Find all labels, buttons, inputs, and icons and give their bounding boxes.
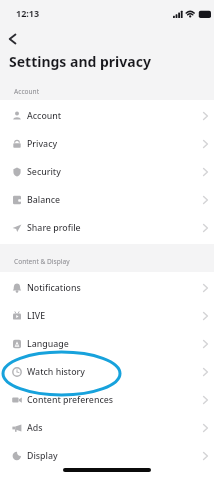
staticText: Account: [14, 87, 40, 96]
button[interactable]: Watch history: [0, 358, 214, 386]
staticText: Privacy: [27, 138, 58, 150]
staticText: Account: [27, 110, 62, 122]
button[interactable]: Privacy: [0, 130, 214, 158]
button[interactable]: Security: [0, 158, 214, 186]
staticText: Display: [27, 450, 58, 462]
staticText: Settings and privacy: [9, 52, 151, 71]
staticText: 12:13: [16, 7, 40, 19]
staticText: LIVE: [27, 310, 46, 322]
staticText: Share profile: [27, 222, 81, 234]
button[interactable]: Back: [0, 27, 24, 50]
staticText: Security: [27, 166, 61, 178]
button[interactable]: Notifications: [0, 274, 214, 302]
staticText: Ads: [27, 422, 43, 434]
button[interactable]: Ads: [0, 414, 214, 442]
button[interactable]: Content preferences: [0, 386, 214, 414]
button[interactable]: Balance: [0, 186, 214, 214]
staticText: Content preferences: [27, 394, 114, 406]
button[interactable]: Share profile: [0, 214, 214, 242]
button[interactable]: LIVE: [0, 302, 214, 330]
staticText: Balance: [27, 194, 61, 206]
staticText: Content & Display: [14, 257, 70, 266]
staticText: Watch history: [27, 366, 85, 378]
button[interactable]: Display: [0, 442, 214, 470]
button[interactable]: Account: [0, 102, 214, 130]
staticText: Notifications: [27, 282, 81, 294]
staticText: Language: [27, 338, 69, 350]
button[interactable]: Language: [0, 330, 214, 358]
